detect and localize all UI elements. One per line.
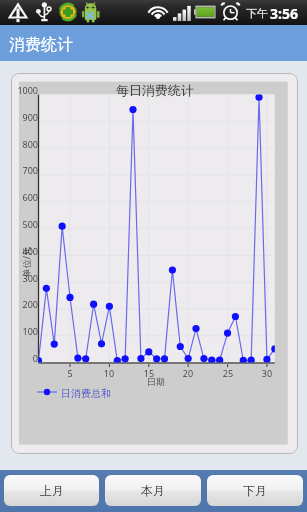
staticText: 单位/元: [19, 246, 31, 277]
staticText: 400: [2, 245, 38, 257]
staticText: 300: [2, 272, 38, 284]
button[interactable]: 上月: [4, 475, 99, 506]
staticText: 5: [58, 367, 82, 379]
staticText: 20: [176, 367, 200, 379]
staticText: 1000: [2, 84, 38, 96]
staticText: 900: [2, 111, 38, 123]
staticText: 30: [255, 367, 279, 379]
staticText: 日期: [134, 376, 178, 387]
staticText: 10: [97, 367, 121, 379]
staticText: 600: [2, 191, 38, 203]
staticText: 上月: [40, 483, 64, 498]
button[interactable]: 下月: [207, 475, 303, 506]
staticText: 800: [2, 138, 38, 150]
staticText: 3:56: [270, 4, 298, 23]
staticText: 下午: [246, 6, 268, 20]
staticText: 200: [2, 298, 38, 310]
staticText: 15: [137, 367, 161, 379]
staticText: 每日消费统计: [75, 82, 235, 98]
staticText: 下月: [243, 483, 267, 498]
staticText: 0: [2, 352, 38, 364]
staticText: 25: [216, 367, 240, 379]
staticText: 700: [2, 164, 38, 176]
staticText: 500: [2, 218, 38, 230]
staticText: 100: [2, 325, 38, 337]
staticText: 本月: [141, 483, 165, 498]
staticText: 日消费总和: [61, 387, 111, 400]
button[interactable]: 本月: [105, 475, 201, 506]
staticText: 消费统计: [9, 35, 73, 55]
